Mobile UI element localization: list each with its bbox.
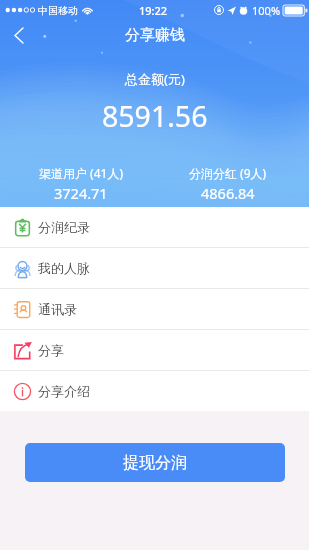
- staticText: 渠道用户 (41人): [39, 165, 124, 181]
- button[interactable]: 我的人脉: [0, 248, 309, 288]
- staticText: 3724.71: [54, 183, 108, 203]
- staticText: 分享: [38, 342, 64, 358]
- staticText: 100%: [252, 3, 281, 18]
- button[interactable]: 提现分润: [25, 443, 285, 482]
- staticText: 我的人脉: [38, 260, 90, 276]
- staticText: 总金额(元): [125, 70, 185, 88]
- button[interactable]: 分享: [0, 330, 309, 370]
- staticText: 中国移动: [38, 4, 78, 17]
- staticText: 分享介绍: [38, 383, 90, 399]
- staticText: 分享赚钱: [125, 26, 185, 45]
- staticText: 通讯录: [38, 301, 77, 317]
- button[interactable]: Back: [0, 20, 38, 50]
- button[interactable]: 分享介绍: [0, 371, 309, 411]
- staticText: 提现分润: [123, 453, 187, 473]
- staticText: 分润分红 (9人): [189, 165, 267, 181]
- staticText: 8591.56: [102, 97, 208, 136]
- staticText: 19:22: [139, 3, 168, 18]
- staticText: 分润纪录: [38, 219, 90, 235]
- button[interactable]: 通讯录: [0, 289, 309, 329]
- staticText: 4866.84: [201, 183, 255, 203]
- button[interactable]: 分润纪录: [0, 207, 309, 247]
